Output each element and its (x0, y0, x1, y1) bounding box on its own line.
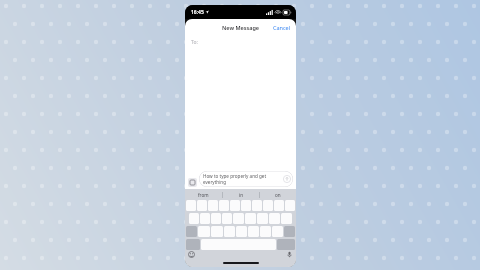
staticText: To: (191, 39, 198, 46)
button[interactable] (245, 213, 256, 224)
button[interactable]: in (223, 189, 259, 200)
staticText: in (239, 192, 244, 198)
button[interactable]: Cancel (268, 21, 296, 34)
button[interactable]: How to type properly and get everything (199, 171, 293, 187)
button[interactable] (285, 200, 295, 211)
staticText: New Message (222, 24, 260, 31)
button[interactable] (198, 226, 210, 237)
staticText: from (198, 192, 209, 198)
button[interactable]: Send (283, 175, 291, 183)
button[interactable] (252, 200, 262, 211)
button[interactable] (269, 213, 280, 224)
staticText: How to type properly and get everything (203, 173, 281, 185)
staticText: Cancel (273, 24, 291, 31)
button[interactable] (200, 213, 210, 224)
button[interactable] (222, 213, 232, 224)
button[interactable] (236, 226, 247, 237)
button[interactable] (230, 200, 240, 211)
button[interactable]: To: (185, 36, 296, 49)
button[interactable] (272, 226, 283, 237)
button[interactable]: Dictation (286, 251, 293, 258)
button[interactable]: Emoji (188, 251, 195, 258)
button[interactable]: on (260, 189, 296, 200)
button[interactable]: Apps (188, 178, 197, 187)
button[interactable] (208, 200, 218, 211)
button[interactable] (219, 200, 229, 211)
button[interactable] (263, 200, 273, 211)
button[interactable] (274, 200, 284, 211)
button[interactable] (281, 213, 292, 224)
button[interactable] (248, 226, 259, 237)
button[interactable]: from (185, 189, 222, 200)
button[interactable] (233, 213, 244, 224)
button[interactable] (241, 200, 251, 211)
button[interactable] (186, 200, 196, 211)
button[interactable] (260, 226, 271, 237)
button[interactable] (211, 226, 223, 237)
button[interactable] (257, 213, 268, 224)
button[interactable] (197, 200, 207, 211)
staticText: 16:45 (191, 9, 204, 16)
staticText: on (275, 192, 281, 198)
button[interactable] (224, 226, 235, 237)
button[interactable] (189, 213, 199, 224)
button[interactable] (211, 213, 221, 224)
